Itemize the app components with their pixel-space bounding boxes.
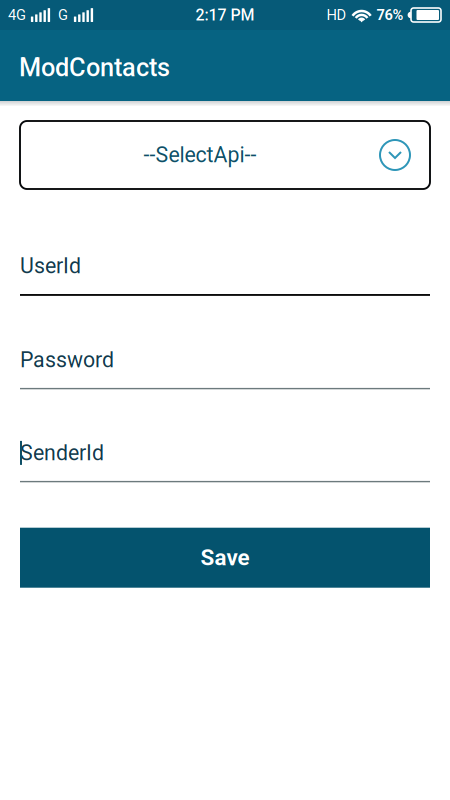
- staticText: SenderId: [20, 440, 104, 465]
- staticText: 76%: [377, 6, 404, 24]
- staticText: ModContacts: [19, 53, 170, 82]
- staticText: Password: [20, 347, 114, 372]
- staticText: 4G: [8, 6, 26, 24]
- staticText: UserId: [20, 253, 81, 278]
- staticText: Save: [200, 545, 249, 571]
- staticText: HD: [327, 6, 347, 24]
- staticText: G: [58, 6, 68, 24]
- button[interactable]: Save: [20, 528, 430, 588]
- button[interactable]: --SelectApi--: [20, 121, 430, 189]
- staticText: --SelectApi--: [143, 142, 256, 167]
- staticText: 2:17 PM: [195, 6, 254, 24]
